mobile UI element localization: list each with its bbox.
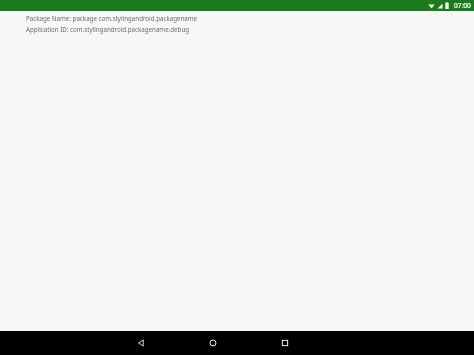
staticText: Application ID: com.stylingandroid.packa… <box>26 25 190 33</box>
staticText: Package Name: package com.stylingandroid… <box>26 14 198 22</box>
button[interactable]: Back <box>131 331 151 355</box>
staticText: 07:00 <box>454 1 471 10</box>
button[interactable]: Recent apps <box>275 331 295 355</box>
button[interactable]: Home <box>203 331 223 355</box>
